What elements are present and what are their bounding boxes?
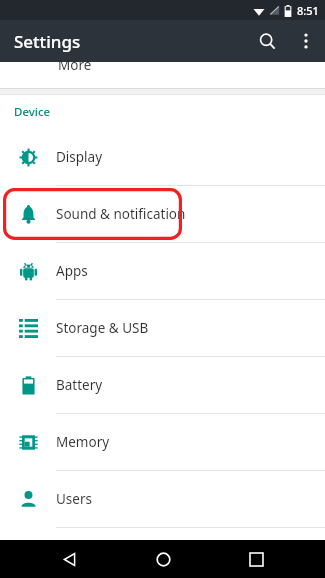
staticText: Settings xyxy=(14,30,81,53)
button[interactable]: Home xyxy=(139,540,187,578)
button[interactable]: Recent apps xyxy=(232,540,280,578)
staticText: Device xyxy=(14,104,51,120)
button[interactable]: Storage & USB xyxy=(0,300,325,356)
staticText: Battery xyxy=(56,376,103,394)
staticText: Sound & notification xyxy=(56,205,186,223)
button[interactable]: Battery xyxy=(0,357,325,413)
staticText: Apps xyxy=(56,262,88,280)
staticText: Storage & USB xyxy=(56,319,149,337)
button[interactable]: Apps xyxy=(0,243,325,299)
button[interactable]: Sound & notification xyxy=(0,186,325,242)
button[interactable]: Users xyxy=(0,471,325,527)
staticText: 8:51 xyxy=(297,3,319,18)
button[interactable]: Back xyxy=(45,540,93,578)
button[interactable]: Search xyxy=(247,21,287,61)
staticText: Users xyxy=(56,490,92,508)
staticText: More xyxy=(58,56,92,74)
button[interactable]: More options xyxy=(287,22,325,60)
button[interactable]: Display xyxy=(0,129,325,185)
button[interactable]: Memory xyxy=(0,414,325,470)
staticText: Memory xyxy=(56,433,110,451)
staticText: Display xyxy=(56,148,103,166)
